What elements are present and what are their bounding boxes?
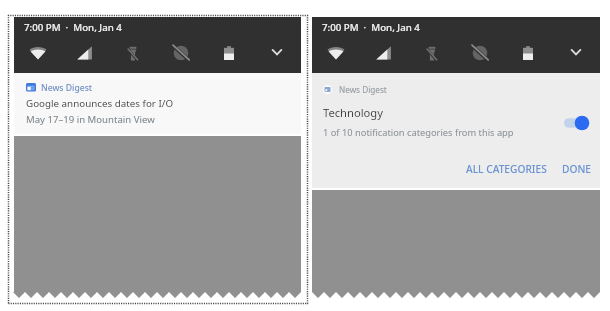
button[interactable]: Flashlight off	[408, 42, 456, 64]
button[interactable]: Battery	[504, 42, 552, 64]
button[interactable]: Wi-Fi	[312, 42, 360, 64]
staticText: 1 of 10 notification categories from thi…	[323, 126, 514, 139]
button[interactable]: News Digest	[14, 73, 301, 136]
button[interactable]: DONE	[557, 158, 597, 180]
button[interactable]: Battery	[205, 42, 253, 64]
button[interactable]: Wi-Fi	[14, 42, 61, 64]
button[interactable]: Technology notifications toggle	[562, 115, 592, 131]
staticText: Google announces dates for I/O	[26, 97, 174, 110]
staticText: News Digest	[339, 84, 387, 95]
staticText: DONE	[562, 162, 592, 176]
staticText: News Digest	[41, 82, 93, 94]
button[interactable]: Flashlight off	[109, 42, 157, 64]
button[interactable]: Mobile signal	[360, 42, 408, 64]
button[interactable]: Expand quick settings	[552, 42, 600, 64]
staticText: May 17–19 in Mountain View	[26, 113, 155, 126]
staticText: 7:00 PM · Mon, Jan 4	[322, 21, 420, 34]
button[interactable]: Mobile signal	[61, 42, 109, 64]
staticText: 7:00 PM · Mon, Jan 4	[24, 21, 122, 34]
button[interactable]: Do not disturb off	[157, 42, 205, 64]
button[interactable]: Do not disturb off	[456, 42, 504, 64]
staticText: ALL CATEGORIES	[466, 162, 547, 176]
staticText: Technology	[323, 105, 383, 120]
button[interactable]: ALL CATEGORIES	[461, 158, 552, 180]
button[interactable]: Expand quick settings	[253, 42, 301, 64]
